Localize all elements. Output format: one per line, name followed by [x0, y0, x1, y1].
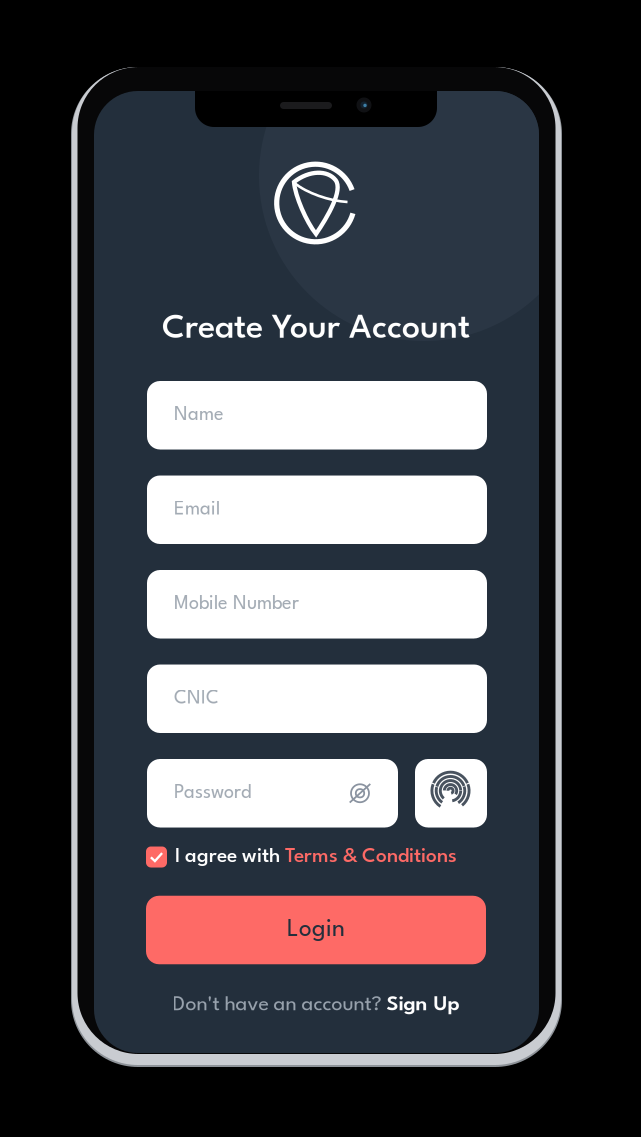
- staticText: Sign Up: [386, 995, 459, 1015]
- button[interactable]: Terms & Conditions: [285, 847, 457, 867]
- staticText: Don't have an account?: [172, 995, 386, 1015]
- button[interactable]: Email: [147, 475, 487, 544]
- button[interactable]: CNIC: [147, 664, 487, 733]
- button[interactable]: Sign in with fingerprint: [415, 759, 487, 827]
- button[interactable]: Name: [147, 381, 487, 449]
- button[interactable]: Mobile Number: [147, 570, 487, 638]
- staticText: Login: [287, 918, 345, 942]
- button[interactable]: Login: [146, 896, 486, 964]
- staticText: Email: [174, 500, 220, 519]
- staticText: Name: [174, 406, 224, 424]
- staticText: Terms & Conditions: [285, 847, 457, 867]
- button[interactable]: Password: [147, 759, 398, 827]
- staticText: CNIC: [174, 689, 219, 708]
- staticText: Mobile Number: [174, 595, 299, 613]
- staticText: Create Your Account: [162, 312, 470, 345]
- staticText: Password: [174, 784, 251, 802]
- button[interactable]: Sign Up: [386, 995, 459, 1015]
- button[interactable]: I agree with terms and conditions: [146, 846, 167, 867]
- staticText: I agree with: [175, 847, 285, 867]
